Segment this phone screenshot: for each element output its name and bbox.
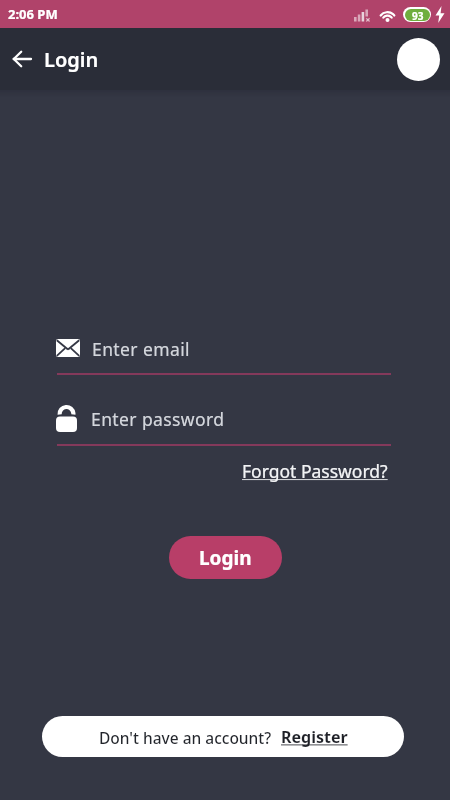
staticText: Enter password: [91, 407, 225, 431]
staticText: Login: [199, 545, 252, 571]
button[interactable]: Don't have an account?: [42, 716, 404, 757]
staticText: Login: [44, 46, 99, 73]
staticText: 93: [412, 9, 424, 21]
button[interactable]: Login: [169, 536, 282, 579]
button[interactable]: [13, 51, 32, 67]
staticText: Enter email: [92, 337, 190, 359]
button[interactable]: Forgot Password?: [242, 459, 388, 483]
staticText: Don't have an account?: [99, 727, 272, 748]
staticText: 2:06 PM: [8, 5, 58, 23]
staticText: Register: [281, 726, 348, 748]
button[interactable]: [397, 38, 440, 81]
